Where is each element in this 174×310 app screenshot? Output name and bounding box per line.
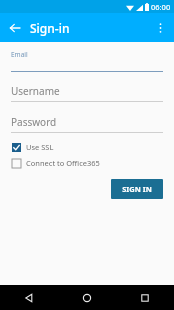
staticText: Sign-in xyxy=(30,20,70,36)
staticText: Email xyxy=(11,50,28,59)
button[interactable]: Connect to Office365 xyxy=(11,157,100,169)
button[interactable]: Use SSL xyxy=(11,141,54,153)
staticText: Use SSL xyxy=(26,142,54,152)
staticText: Connect to Office365 xyxy=(26,158,100,168)
button[interactable]: SIGN IN xyxy=(111,179,163,199)
staticText: Username xyxy=(11,84,60,98)
button[interactable]: Back xyxy=(5,18,25,38)
button[interactable]: Back xyxy=(0,285,58,310)
staticText: 06:00 xyxy=(151,2,171,12)
button[interactable]: More options xyxy=(150,18,170,38)
button[interactable]: Password xyxy=(11,115,163,133)
button[interactable]: Username xyxy=(11,84,163,102)
staticText: SIGN IN xyxy=(122,184,152,194)
button[interactable]: Recent apps xyxy=(116,285,174,310)
button[interactable]: Email xyxy=(11,50,163,72)
button[interactable]: Home xyxy=(58,285,116,310)
staticText: Password xyxy=(11,115,57,129)
